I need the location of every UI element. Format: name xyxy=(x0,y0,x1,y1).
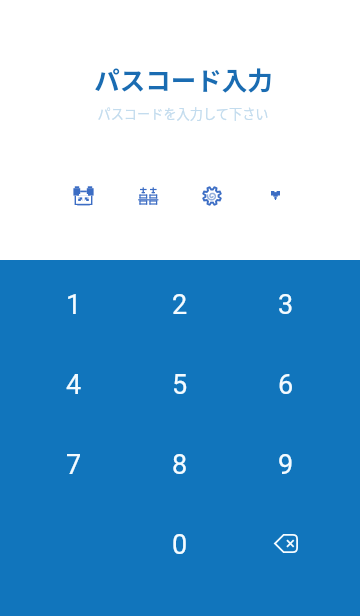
staticText: パスコード入力 xyxy=(94,60,273,97)
button[interactable]: 7 xyxy=(32,436,116,494)
staticText: 2 xyxy=(172,289,188,321)
staticText: 7 xyxy=(66,449,82,481)
button[interactable]: 6 xyxy=(244,356,328,414)
staticText: 1 xyxy=(66,289,82,321)
staticText: 9 xyxy=(278,449,294,481)
button[interactable]: 0 xyxy=(138,516,222,574)
staticText: 0 xyxy=(172,529,188,561)
staticText: パスコードを入力して下さい xyxy=(97,104,269,123)
staticText: 8 xyxy=(172,449,188,481)
button[interactable]: 1 xyxy=(32,276,116,334)
button[interactable]: 9 xyxy=(244,436,328,494)
button[interactable]: Backspace xyxy=(244,516,328,574)
button[interactable]: 4 xyxy=(32,356,116,414)
button[interactable]: 2 xyxy=(138,276,222,334)
button[interactable]: 8 xyxy=(138,436,222,494)
button[interactable]: 5 xyxy=(138,356,222,414)
staticText: 4 xyxy=(66,369,82,401)
staticText: 3 xyxy=(278,289,294,321)
staticText: 6 xyxy=(278,369,294,401)
button[interactable]: 3 xyxy=(244,276,328,334)
staticText: 5 xyxy=(172,369,188,401)
